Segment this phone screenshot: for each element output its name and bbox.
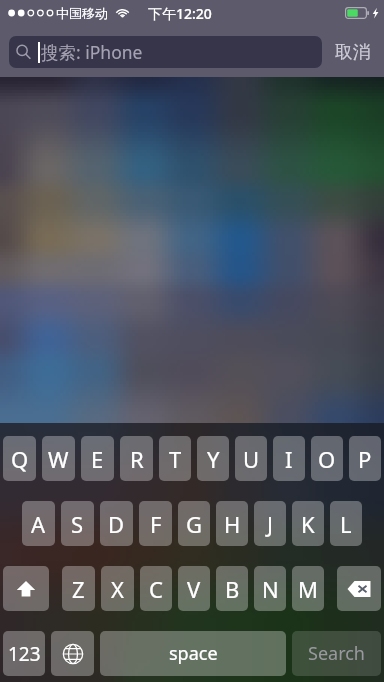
- button[interactable]: W: [42, 436, 75, 481]
- button[interactable]: U: [235, 436, 267, 481]
- button[interactable]: J: [254, 501, 286, 546]
- staticText: H: [224, 509, 241, 539]
- staticText: A: [31, 509, 46, 539]
- staticText: G: [186, 509, 203, 539]
- staticText: 下午12:20: [148, 4, 212, 23]
- button[interactable]: Change keyboard: [51, 631, 94, 676]
- staticText: 123: [8, 641, 41, 667]
- staticText: 中国移动: [56, 5, 108, 21]
- staticText: K: [301, 509, 315, 539]
- button[interactable]: S: [61, 501, 94, 546]
- staticText: 搜索: iPhone: [41, 40, 143, 64]
- button[interactable]: Y: [197, 436, 229, 481]
- staticText: T: [169, 444, 182, 474]
- staticText: J: [267, 509, 274, 539]
- button[interactable]: N: [254, 566, 286, 611]
- button[interactable]: 搜索: iPhone: [9, 36, 322, 68]
- button[interactable]: Search: [292, 631, 381, 676]
- staticText: O: [318, 444, 336, 474]
- button[interactable]: 123: [3, 631, 45, 676]
- button[interactable]: P: [349, 436, 381, 481]
- staticText: M: [298, 574, 318, 604]
- button[interactable]: X: [101, 566, 134, 611]
- button[interactable]: Q: [3, 436, 36, 481]
- button[interactable]: D: [100, 501, 133, 546]
- staticText: Z: [72, 574, 85, 604]
- staticText: C: [149, 574, 163, 604]
- button[interactable]: K: [292, 501, 324, 546]
- button[interactable]: Shift: [3, 566, 49, 611]
- staticText: Q: [11, 444, 29, 474]
- staticText: S: [71, 509, 84, 539]
- staticText: W: [48, 444, 69, 474]
- button[interactable]: C: [140, 566, 172, 611]
- button[interactable]: A: [22, 501, 55, 546]
- button[interactable]: O: [311, 436, 343, 481]
- staticText: E: [91, 444, 104, 474]
- button[interactable]: H: [216, 501, 248, 546]
- button[interactable]: B: [216, 566, 248, 611]
- staticText: I: [285, 444, 293, 474]
- staticText: F: [150, 509, 162, 539]
- staticText: R: [130, 444, 144, 474]
- staticText: Y: [207, 444, 220, 474]
- staticText: V: [187, 574, 201, 604]
- staticText: B: [225, 574, 240, 604]
- staticText: X: [111, 574, 124, 604]
- staticText: P: [358, 444, 372, 474]
- button[interactable]: G: [178, 501, 210, 546]
- button[interactable]: T: [159, 436, 191, 481]
- button[interactable]: V: [178, 566, 210, 611]
- staticText: 取消: [335, 41, 370, 63]
- button[interactable]: E: [81, 436, 114, 481]
- button[interactable]: F: [139, 501, 172, 546]
- button[interactable]: 取消: [322, 35, 376, 69]
- button[interactable]: M: [292, 566, 324, 611]
- button[interactable]: I: [273, 436, 305, 481]
- staticText: Search: [308, 641, 365, 666]
- staticText: D: [108, 509, 125, 539]
- staticText: space: [169, 641, 218, 666]
- staticText: L: [340, 509, 352, 539]
- staticText: U: [243, 444, 260, 474]
- button[interactable]: R: [120, 436, 153, 481]
- button[interactable]: Z: [62, 566, 95, 611]
- button[interactable]: Backspace: [337, 566, 381, 611]
- button[interactable]: L: [330, 501, 362, 546]
- button[interactable]: space: [100, 631, 286, 676]
- staticText: N: [262, 574, 279, 604]
